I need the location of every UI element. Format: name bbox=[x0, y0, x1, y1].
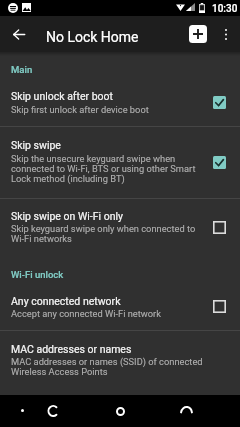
staticText: MAC addresses or names bbox=[11, 343, 132, 355]
button[interactable]: Checked bbox=[209, 152, 229, 172]
staticText: Skip unlock after boot bbox=[11, 90, 113, 102]
staticText: Skip swipe bbox=[11, 139, 61, 151]
button[interactable] bbox=[0, 82, 240, 126]
staticText: Skip the unsecure keyguard swipe when co… bbox=[11, 153, 203, 185]
button[interactable] bbox=[0, 199, 240, 252]
staticText: No Lock Home bbox=[46, 29, 139, 45]
staticText: MAC addresses or names (SSID) of connect… bbox=[11, 356, 203, 378]
button[interactable]: Back bbox=[32, 395, 74, 427]
button[interactable] bbox=[0, 331, 240, 386]
staticText: Accept any connected Wi-Fi network bbox=[11, 308, 161, 319]
button[interactable] bbox=[0, 285, 240, 330]
staticText: Skip first unlock after device boot bbox=[11, 104, 149, 115]
button[interactable]: More options bbox=[214, 16, 238, 52]
button[interactable] bbox=[0, 127, 240, 198]
button[interactable]: Recent apps bbox=[165, 395, 207, 427]
staticText: Skip swipe on Wi-Fi only bbox=[11, 210, 123, 222]
button[interactable]: Checked bbox=[209, 92, 229, 112]
button[interactable]: Navigate up bbox=[0, 16, 38, 52]
staticText: Main bbox=[11, 64, 33, 75]
staticText: Skip keyguard swipe only when connected … bbox=[11, 223, 203, 245]
button[interactable]: Home bbox=[99, 395, 141, 427]
staticText: 10:30 bbox=[212, 3, 238, 15]
staticText: Any connected network bbox=[11, 295, 121, 307]
button[interactable]: Unchecked bbox=[209, 296, 229, 316]
staticText: Wi-Fi unlock bbox=[11, 269, 64, 280]
button[interactable]: Unchecked bbox=[209, 217, 229, 237]
button[interactable]: Add bbox=[182, 16, 214, 52]
